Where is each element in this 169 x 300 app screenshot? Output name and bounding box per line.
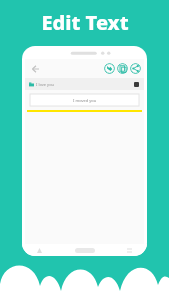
button[interactable]: Back xyxy=(35,246,44,255)
button[interactable]: Share xyxy=(130,63,141,74)
staticText: Edit Text xyxy=(41,9,129,36)
button[interactable]: Call xyxy=(104,63,115,74)
button[interactable]: Clear xyxy=(133,81,140,88)
button[interactable]: Recents xyxy=(125,246,134,255)
button[interactable]: I love you xyxy=(25,78,144,90)
staticText: I moved you xyxy=(73,98,97,103)
button[interactable]: I moved you xyxy=(30,94,139,106)
button[interactable]: Home xyxy=(75,248,95,253)
staticText: I love you xyxy=(36,82,55,87)
button[interactable]: Back xyxy=(28,62,41,75)
button[interactable]: Copy xyxy=(117,63,128,74)
